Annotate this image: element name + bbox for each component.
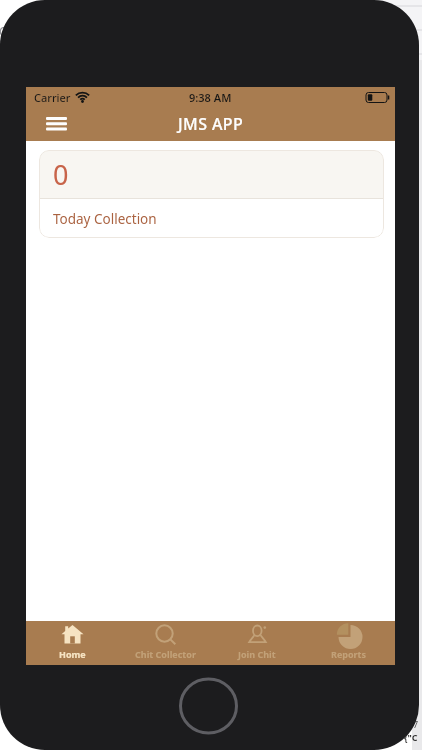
button[interactable]: Chit Collector <box>119 621 211 665</box>
button[interactable]: Join Chit <box>211 621 303 665</box>
staticText: Reports <box>331 648 367 660</box>
staticText: {"C <box>404 731 418 743</box>
button[interactable]: Reports <box>303 621 395 665</box>
staticText: 0 <box>53 156 69 193</box>
staticText: Carrier <box>34 90 71 105</box>
button[interactable] <box>42 112 70 136</box>
staticText: Home <box>59 648 86 660</box>
staticText: Cit <box>0 23 15 39</box>
button[interactable]: 0 <box>39 150 384 238</box>
staticText: Chit Collector <box>135 648 196 660</box>
staticText: 7 <box>413 718 419 730</box>
button[interactable]: Home <box>26 621 119 665</box>
staticText: Join Chit <box>238 648 276 660</box>
staticText: Today Collection <box>53 210 157 228</box>
staticText: 9:38 AM <box>189 90 232 105</box>
staticText: JMS APP <box>178 113 244 135</box>
